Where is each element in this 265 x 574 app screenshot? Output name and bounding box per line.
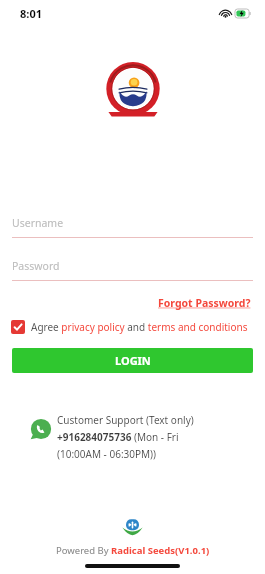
staticText: Agree privacy policy and terms and condi… — [31, 320, 248, 334]
staticText: Forgot Password? — [158, 296, 251, 310]
staticText: 8:01 — [20, 6, 42, 21]
staticText: LOGIN — [115, 353, 151, 368]
button[interactable]: WhatsApp — [30, 418, 52, 440]
button[interactable]: Password — [12, 259, 253, 281]
staticText: +916284075736 (Mon - Fri — [57, 430, 179, 444]
button[interactable]: Forgot Password? — [156, 294, 253, 312]
staticText: Username — [12, 216, 64, 230]
button[interactable]: Agree privacy policy and terms and condi… — [11, 320, 265, 334]
staticText: Customer Support (Text only) — [57, 413, 194, 427]
staticText: Powered By Radical Seeds(V1.0.1) — [56, 544, 210, 557]
staticText: Password — [12, 259, 60, 273]
button[interactable]: Username — [12, 216, 253, 238]
button[interactable]: LOGIN — [12, 348, 253, 373]
staticText: (10:00AM - 06:30PM)) — [57, 447, 157, 461]
